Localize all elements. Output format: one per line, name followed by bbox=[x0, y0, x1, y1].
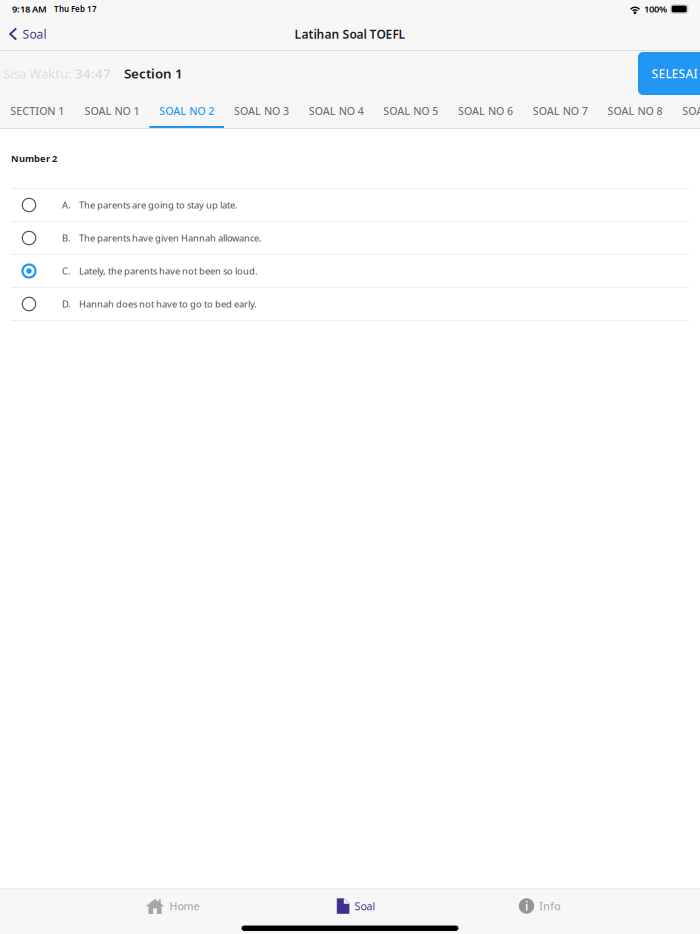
staticText: i bbox=[525, 898, 528, 914]
button[interactable]: SOAL NO 3 bbox=[224, 95, 299, 128]
staticText: 34:47 bbox=[75, 64, 111, 82]
button[interactable]: Home bbox=[81, 889, 264, 922]
staticText: 100% bbox=[644, 3, 667, 15]
staticText: SOAL NO 2 bbox=[159, 104, 214, 118]
staticText: SOAL NO 6 bbox=[458, 104, 513, 118]
button[interactable]: Soal bbox=[264, 889, 448, 922]
staticText: SOAL NO 1 bbox=[85, 104, 140, 118]
staticText: Lately, the parents have not been so lou… bbox=[79, 265, 258, 277]
staticText: Info bbox=[539, 899, 560, 913]
staticText: Sisa Waktu: bbox=[3, 64, 72, 82]
button[interactable]: SOAL NO 5 bbox=[373, 95, 448, 128]
staticText: D. bbox=[62, 298, 71, 310]
button[interactable]: SOAL NO 8 bbox=[598, 95, 672, 128]
staticText: The parents are going to stay up late. bbox=[79, 199, 238, 211]
staticText: Soal bbox=[355, 899, 376, 913]
button[interactable]: SOAL NO 1 bbox=[75, 95, 149, 128]
button[interactable]: D. bbox=[0, 288, 700, 321]
staticText: Number 2 bbox=[11, 152, 57, 165]
staticText: SOAL NO 9 bbox=[682, 104, 700, 118]
staticText: 9:18 AM bbox=[12, 3, 47, 15]
staticText: Section 1 bbox=[124, 64, 183, 82]
button[interactable]: i bbox=[448, 889, 631, 922]
staticText: SELESAI bbox=[651, 65, 697, 81]
staticText: Soal bbox=[22, 26, 46, 42]
staticText: SOAL NO 7 bbox=[533, 104, 588, 118]
staticText: SOAL NO 4 bbox=[309, 104, 364, 118]
button[interactable]: SOAL NO 2 bbox=[149, 95, 224, 128]
staticText: SOAL NO 8 bbox=[607, 104, 662, 118]
button[interactable]: SOAL NO 9 bbox=[672, 95, 700, 128]
staticText: A. bbox=[62, 199, 71, 211]
button[interactable]: C. bbox=[0, 255, 700, 288]
staticText: SOAL NO 5 bbox=[383, 104, 438, 118]
button[interactable]: SECTION 1 bbox=[0, 95, 75, 128]
staticText: SOAL NO 3 bbox=[234, 104, 289, 118]
button[interactable]: SOAL NO 4 bbox=[299, 95, 373, 128]
button[interactable]: Soal bbox=[0, 19, 56, 49]
staticText: The parents have given Hannah allowance. bbox=[79, 232, 262, 244]
button[interactable]: SOAL NO 6 bbox=[448, 95, 523, 128]
staticText: Thu Feb 17 bbox=[54, 4, 97, 14]
staticText: C. bbox=[62, 265, 71, 277]
staticText: Hannah does not have to go to bed early. bbox=[79, 298, 257, 310]
button[interactable]: SELESAI bbox=[638, 52, 700, 95]
button[interactable]: SOAL NO 7 bbox=[523, 95, 598, 128]
staticText: Home bbox=[170, 899, 200, 913]
staticText: Latihan Soal TOEFL bbox=[294, 26, 405, 42]
staticText: B. bbox=[62, 232, 71, 244]
staticText: SECTION 1 bbox=[10, 104, 64, 118]
button[interactable]: A. bbox=[0, 189, 700, 222]
button[interactable]: B. bbox=[0, 222, 700, 255]
